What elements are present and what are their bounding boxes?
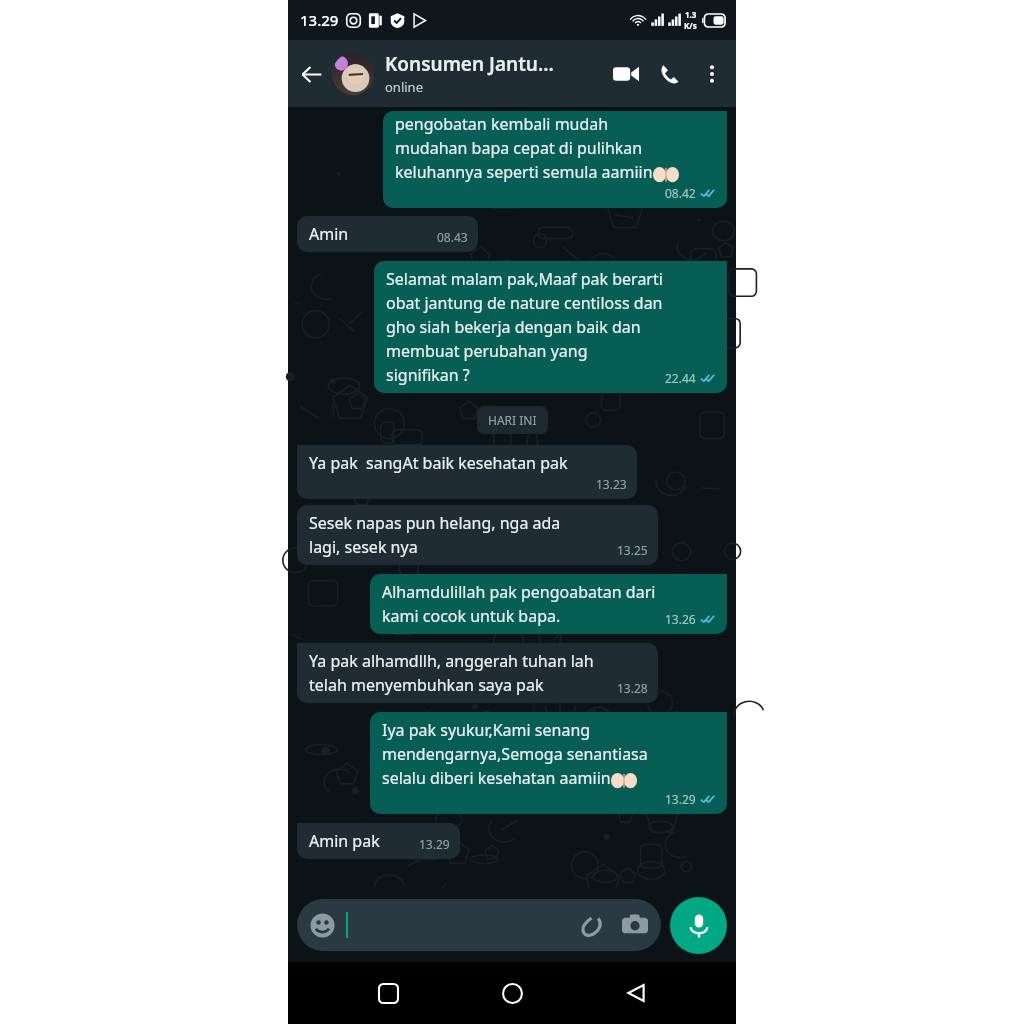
staticText: 22.44 xyxy=(665,370,696,386)
button[interactable]: Amin pak xyxy=(297,823,460,859)
staticText: Iya pak syukur,Kami senang xyxy=(382,719,591,741)
button[interactable]: Video call xyxy=(604,52,648,96)
button[interactable]: Sesek napas pun helang, nga ada xyxy=(297,505,658,565)
button[interactable]: Ya pak alhamdllh, anggerah tuhan lah xyxy=(297,643,658,703)
button[interactable]: Voice call xyxy=(648,52,692,96)
button[interactable]: Emoji xyxy=(297,899,661,951)
button[interactable]: Selamat malam pak,Maaf pak berarti xyxy=(374,261,727,393)
staticText: Alhamdulillah pak pengoabatan dari xyxy=(382,581,656,603)
staticText: membuat perubahan yang xyxy=(386,340,588,362)
button[interactable]: Iya pak syukur,Kami senang xyxy=(370,712,727,814)
button[interactable]: Back xyxy=(292,55,330,93)
button[interactable]: Home xyxy=(488,969,536,1017)
button[interactable]: Alhamdulillah pak pengoabatan dari xyxy=(370,574,727,634)
staticText: obat jantung de nature centiloss dan xyxy=(386,292,663,314)
staticText: K/s xyxy=(684,20,697,31)
staticText: 13.29 xyxy=(419,836,450,852)
button[interactable]: Back xyxy=(612,969,660,1017)
staticText: 13.29 xyxy=(665,791,696,807)
button[interactable]: Profile photo xyxy=(332,53,374,95)
other: Attach xyxy=(580,913,605,938)
staticText: 13.29 xyxy=(300,10,339,30)
staticText: 13.28 xyxy=(617,680,648,696)
button[interactable]: Recents xyxy=(364,969,412,1017)
staticText: telah menyembuhkan saya pak xyxy=(309,674,544,696)
staticText: 08.43 xyxy=(437,229,468,245)
staticText: HARI INI xyxy=(488,412,537,428)
staticText: Ya pak sangAt baik kesehatan pak xyxy=(309,452,568,474)
staticText: mudahan bapa cepat di pulihkan xyxy=(395,137,643,159)
staticText: signifikan ? xyxy=(386,364,470,386)
button[interactable]: pengobatan kembali mudah xyxy=(383,111,727,208)
button[interactable]: Amin xyxy=(297,216,478,252)
other: Camera xyxy=(622,912,648,938)
staticText: kami cocok untuk bapa. xyxy=(382,605,561,627)
button[interactable]: More options xyxy=(692,54,732,94)
staticText: mendengarnya,Semoga senantiasa xyxy=(382,743,648,765)
staticText: gho siah bekerja dengan baik dan xyxy=(386,316,641,338)
button[interactable]: Konsumen Jantu… xyxy=(385,51,604,96)
button[interactable]: Voice message xyxy=(670,897,727,954)
staticText: Amin xyxy=(309,223,349,245)
staticText: 13.25 xyxy=(617,542,648,558)
staticText: Amin pak xyxy=(309,830,380,852)
other: Emoji xyxy=(310,913,335,938)
staticText: selalu diberi kesehatan aamiin xyxy=(382,767,611,789)
staticText: online xyxy=(385,78,423,96)
staticText: 13.23 xyxy=(596,476,627,492)
staticText: 13.26 xyxy=(665,611,696,627)
staticText: 1.3 xyxy=(685,9,697,20)
staticText: 08.42 xyxy=(665,185,696,201)
staticText: Selamat malam pak,Maaf pak berarti xyxy=(386,268,663,290)
staticText: pengobatan kembali mudah xyxy=(395,113,609,135)
staticText: lagi, sesek nya xyxy=(309,536,418,558)
staticText: keluhannya seperti semula aamiin xyxy=(395,161,653,183)
staticText: Konsumen Jantu… xyxy=(385,51,554,77)
staticText: Ya pak alhamdllh, anggerah tuhan lah xyxy=(309,650,594,672)
button[interactable]: Ya pak sangAt baik kesehatan pak xyxy=(297,445,637,499)
staticText: Sesek napas pun helang, nga ada xyxy=(309,512,561,534)
